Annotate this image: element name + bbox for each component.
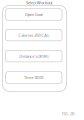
button[interactable]: Open Goal	[5, 9, 62, 20]
staticText: Time 30:00	[24, 75, 43, 80]
staticText: Calories 250 CAL	[18, 32, 49, 38]
staticText: Select Workout	[26, 0, 52, 5]
button[interactable]: Distance 5.00 MI	[5, 50, 62, 62]
staticText: FIG. 2B	[62, 111, 75, 116]
staticText: Distance 5.00 MI	[19, 53, 48, 59]
button[interactable]: Calories 250 CAL	[5, 29, 62, 41]
staticText: Open Goal	[25, 12, 43, 17]
button[interactable]: Time 30:00	[5, 72, 62, 83]
